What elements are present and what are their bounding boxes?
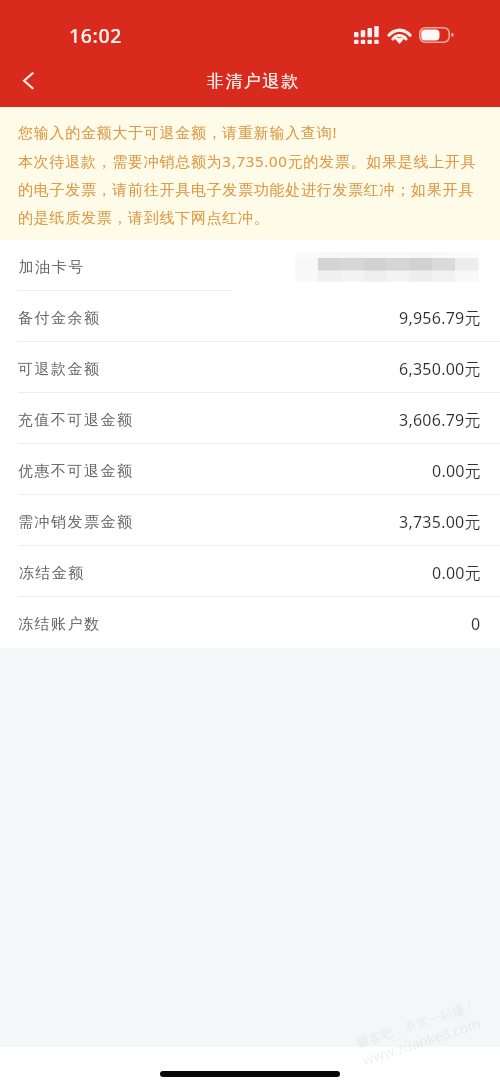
staticText: 需冲销发票金额 (18, 513, 134, 532)
staticText: 3,735.00元 (399, 511, 481, 533)
staticText: 充值不可退金额 (18, 411, 134, 430)
button[interactable]: 冻结金额 (0, 546, 500, 597)
button[interactable]: 冻结账户数 (0, 597, 500, 648)
staticText: 加油卡号 (18, 258, 84, 277)
staticText: www.zuanke8.com (360, 1013, 483, 1069)
staticText: 0.00元 (432, 460, 481, 482)
staticText: 优惠不可退金额 (18, 462, 134, 481)
button[interactable]: Back (0, 60, 56, 107)
staticText: 6,350.00元 (399, 358, 481, 380)
staticText: 您输入的金额大于可退金额，请重新输入查询! 本次待退款，需要冲销总额为3,735… (18, 122, 477, 227)
staticText: 9,956.79元 (399, 307, 481, 329)
button[interactable]: 备付金余额 (0, 291, 500, 342)
staticText: 0.00元 (432, 562, 481, 584)
staticText: 非清户退款 (206, 71, 299, 92)
staticText: 3,606.79元 (399, 409, 481, 431)
staticText: 0 (471, 613, 481, 635)
staticText: 冻结账户数 (18, 615, 101, 634)
button[interactable]: 可退款金额 (0, 342, 500, 393)
button[interactable]: 优惠不可退金额 (0, 444, 500, 495)
button[interactable]: 加油卡号 (0, 240, 500, 291)
staticText: 可退款金额 (18, 360, 101, 379)
staticText: 冻结金额 (18, 564, 84, 583)
staticText: 16:02 (69, 22, 122, 49)
button[interactable]: 需冲销发票金额 (0, 495, 500, 546)
button[interactable]: 充值不可退金额 (0, 393, 500, 444)
staticText: 备付金余额 (18, 309, 101, 328)
staticText: 赚客吧，有奖一起赚！ (355, 997, 478, 1051)
